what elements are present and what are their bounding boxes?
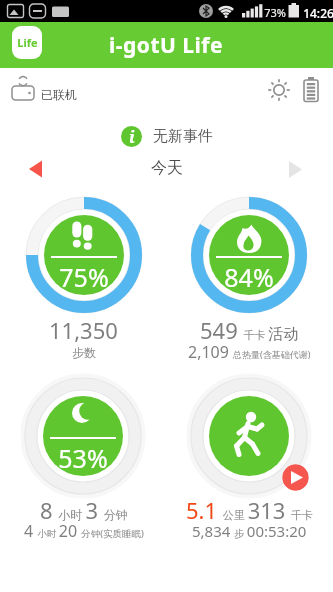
button[interactable] bbox=[300, 76, 322, 104]
staticText: 4 小时 20 分钟(实质睡眠) bbox=[24, 520, 144, 542]
staticText: i bbox=[129, 126, 135, 147]
staticText: Life bbox=[17, 35, 38, 50]
staticText: 14:26 bbox=[303, 5, 333, 21]
button[interactable] bbox=[22, 193, 146, 317]
staticText: 5.1 公里 313 千卡 bbox=[186, 495, 314, 525]
button[interactable] bbox=[21, 374, 145, 498]
staticText: 75% bbox=[59, 260, 109, 292]
button[interactable] bbox=[266, 76, 292, 104]
staticText: 84% bbox=[224, 260, 274, 292]
button[interactable] bbox=[282, 464, 309, 491]
button[interactable]: i bbox=[0, 124, 333, 149]
staticText: 549 千卡 活动 bbox=[200, 315, 299, 345]
staticText: 步数 bbox=[72, 345, 96, 360]
button[interactable]: Life bbox=[12, 26, 42, 59]
button[interactable] bbox=[18, 152, 54, 186]
staticText: 8 小时 3 分钟 bbox=[40, 495, 128, 525]
button[interactable] bbox=[187, 374, 311, 498]
staticText: 73% bbox=[264, 5, 286, 20]
staticText: 2,109 总热量(含基础代谢) bbox=[188, 341, 311, 363]
button[interactable] bbox=[187, 193, 311, 317]
staticText: 53% bbox=[58, 441, 108, 473]
staticText: 无新事件 bbox=[153, 127, 213, 146]
staticText: 已联机 bbox=[41, 87, 77, 102]
staticText: 今天 bbox=[151, 158, 183, 178]
staticText: 11,350 bbox=[49, 315, 118, 345]
button[interactable] bbox=[8, 74, 108, 106]
staticText: i-gotU Life bbox=[109, 31, 224, 60]
button[interactable] bbox=[280, 152, 316, 186]
staticText: 5,834 步 00:53:20 bbox=[192, 521, 307, 541]
